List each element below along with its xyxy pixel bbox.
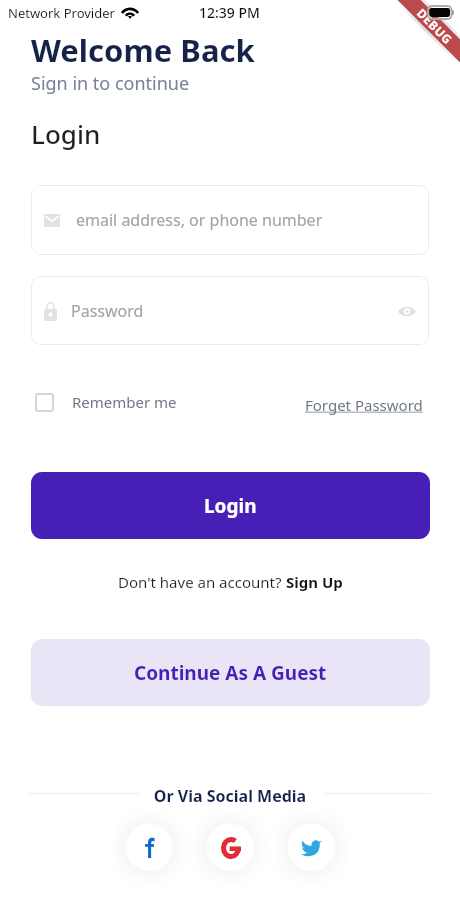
button[interactable]: Facebook xyxy=(126,824,173,871)
button[interactable]: Twitter xyxy=(288,824,335,871)
button[interactable]: Show password xyxy=(389,293,425,329)
button[interactable]: Continue As A Guest xyxy=(31,639,430,706)
button[interactable]: Login xyxy=(31,472,430,539)
staticText: 12:39 PM xyxy=(199,3,260,22)
button[interactable]: Forget Password xyxy=(305,395,423,415)
button[interactable]: Sign Up xyxy=(286,572,343,592)
staticText: Network Provider xyxy=(8,4,115,22)
staticText: Login xyxy=(204,493,257,519)
staticText: Or Via Social Media xyxy=(0,785,460,807)
staticText: Password xyxy=(71,300,144,322)
button[interactable]: Remember me xyxy=(35,392,177,412)
staticText: Remember me xyxy=(72,392,177,412)
staticText: Continue As A Guest xyxy=(134,660,327,686)
staticText: Welcome Back xyxy=(31,29,255,71)
staticText: Login xyxy=(31,116,101,151)
staticText: DEBUG xyxy=(414,5,456,47)
button[interactable]: email address, or phone number xyxy=(31,185,429,255)
button[interactable]: Google xyxy=(207,824,254,871)
button[interactable]: Password xyxy=(31,276,429,345)
staticText: Don't have an account? xyxy=(118,572,286,592)
staticText: email address, or phone number xyxy=(76,209,323,231)
staticText: Sign in to continue xyxy=(31,71,190,96)
